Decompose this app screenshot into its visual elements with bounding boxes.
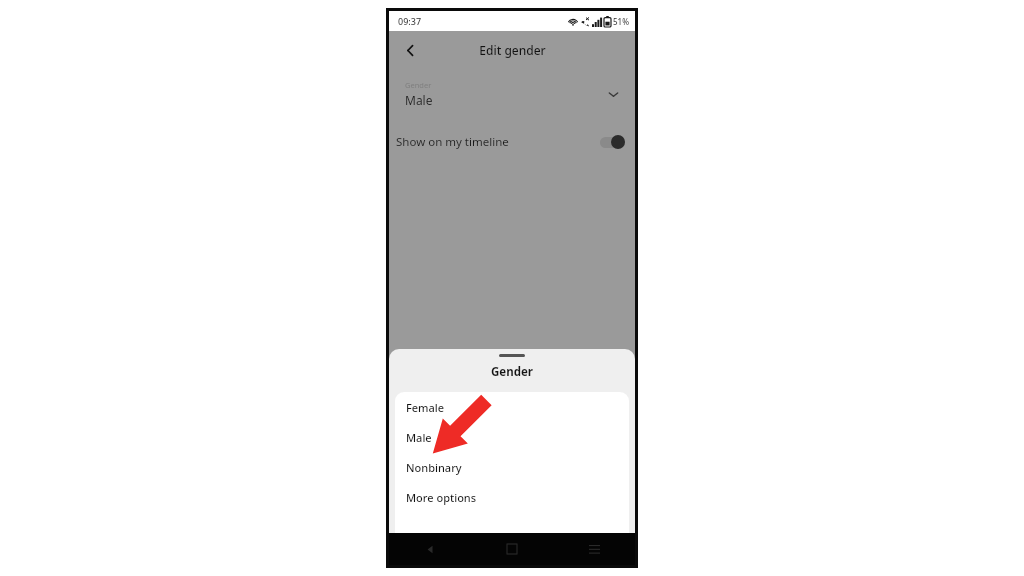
button[interactable]: Male: [395, 422, 629, 452]
button[interactable]: Gender: [389, 68, 635, 120]
staticText: Nonbinary: [406, 460, 462, 475]
button[interactable]: Home: [471, 533, 553, 565]
button[interactable]: More options: [395, 482, 629, 512]
staticText: Show on my timeline: [396, 134, 509, 150]
button[interactable]: Back: [397, 37, 423, 63]
button[interactable]: Nonbinary: [395, 452, 629, 482]
staticText: Female: [406, 400, 445, 415]
staticText: 09:37: [398, 15, 422, 27]
staticText: Male: [405, 92, 433, 108]
staticText: 51%: [613, 16, 629, 27]
button[interactable]: Female: [395, 392, 629, 422]
staticText: More options: [406, 490, 477, 505]
button[interactable]: Recent apps: [553, 533, 635, 565]
staticText: Male: [406, 430, 432, 445]
staticText: Gender: [405, 80, 432, 90]
staticText: Edit gender: [479, 42, 546, 58]
staticText: Gender: [389, 364, 635, 380]
other: Expand gender options: [605, 86, 621, 102]
button[interactable]: Show on my timeline: [389, 120, 635, 164]
